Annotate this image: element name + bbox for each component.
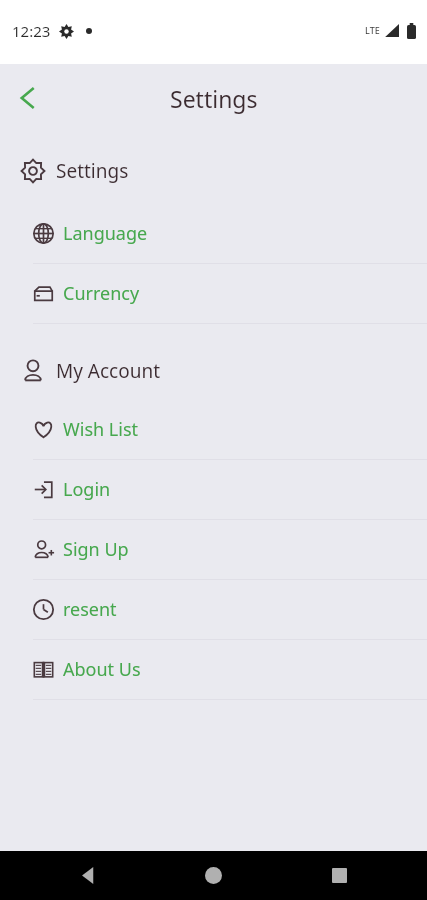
button[interactable]: Settings (0, 150, 427, 192)
button[interactable]: Wish List (0, 400, 427, 459)
staticText: 12:23 (12, 21, 51, 41)
button[interactable]: Home (205, 867, 222, 884)
button[interactable]: resent (0, 580, 427, 639)
staticText: Currency (63, 281, 140, 306)
staticText: LTE (365, 24, 380, 36)
button[interactable]: Currency (0, 264, 427, 323)
button[interactable]: Recents (332, 868, 347, 883)
staticText: Sign Up (63, 537, 129, 562)
button[interactable]: About Us (0, 640, 427, 699)
button[interactable]: Back (0, 69, 58, 127)
button[interactable]: Language (0, 204, 427, 263)
button[interactable]: Sign Up (0, 520, 427, 579)
staticText: Wish List (63, 417, 139, 442)
staticText: resent (63, 597, 117, 622)
button[interactable]: Login (0, 460, 427, 519)
staticText: Login (63, 477, 111, 502)
button[interactable]: My Account (0, 350, 427, 392)
staticText: About Us (63, 657, 141, 682)
staticText: Settings (56, 158, 129, 184)
staticText: My Account (56, 358, 161, 384)
staticText: Settings (170, 83, 258, 114)
staticText: Language (63, 221, 148, 246)
